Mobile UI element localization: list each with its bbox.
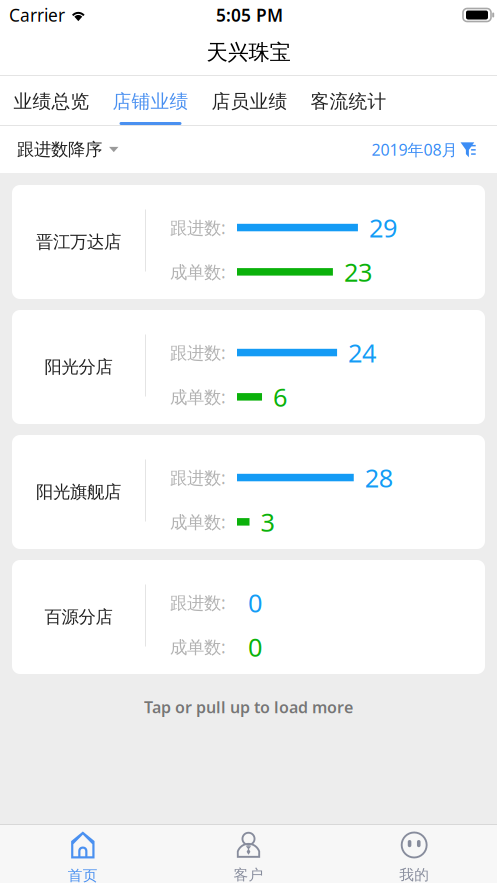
staticText: Tap or pull up to load more	[144, 696, 353, 718]
button[interactable]: 首页	[0, 825, 166, 883]
staticText: 天兴珠宝	[206, 39, 290, 66]
staticText: Carrier	[9, 3, 65, 26]
button[interactable]: 百源分店	[12, 560, 485, 674]
staticText: 3	[260, 505, 274, 539]
staticText: 百源分店	[44, 606, 112, 628]
staticText: 跟进数:	[170, 466, 226, 489]
staticText: 跟进数:	[170, 216, 226, 239]
button[interactable]: 店铺业绩	[112, 76, 189, 125]
staticText: 6	[273, 380, 287, 414]
staticText: 业绩总览	[13, 90, 89, 113]
staticText: 阳光旗舰店	[36, 481, 121, 503]
staticText: 23	[344, 255, 372, 289]
staticText: 店员业绩	[211, 90, 287, 113]
staticText: 2019年08月	[371, 139, 457, 160]
staticText: 我的	[399, 866, 429, 883]
staticText: 0	[248, 630, 262, 664]
button[interactable]: 2019年08月	[371, 126, 476, 173]
button[interactable]: 阳光旗舰店	[12, 435, 485, 549]
button[interactable]: 店员业绩	[211, 76, 288, 125]
staticText: 5:05 PM	[216, 3, 283, 26]
staticText: 29	[369, 211, 397, 244]
staticText: 成单数:	[170, 385, 226, 408]
staticText: 成单数:	[170, 635, 226, 658]
staticText: 客户	[233, 866, 263, 883]
staticText: 跟进数:	[170, 341, 226, 364]
button[interactable]: 阳光分店	[12, 310, 485, 424]
staticText: 24	[348, 336, 376, 369]
staticText: 0	[248, 586, 262, 619]
button[interactable]: 业绩总览	[13, 76, 90, 125]
button[interactable]: 我的	[331, 825, 497, 883]
button[interactable]: Tap or pull up to load more	[12, 685, 485, 729]
button[interactable]: 客户	[166, 825, 331, 883]
button[interactable]: 跟进数降序	[17, 126, 118, 173]
staticText: 跟进数:	[170, 591, 226, 614]
staticText: 成单数:	[170, 510, 226, 533]
staticText: 首页	[68, 866, 98, 883]
button[interactable]: 客流统计	[310, 76, 387, 125]
staticText: 客流统计	[310, 90, 386, 113]
staticText: 阳光分店	[44, 356, 112, 378]
staticText: 跟进数降序	[17, 139, 102, 160]
staticText: 成单数:	[170, 260, 226, 283]
staticText: 晋江万达店	[36, 231, 121, 253]
button[interactable]: 晋江万达店	[12, 185, 485, 299]
staticText: 28	[365, 461, 393, 494]
staticText: 店铺业绩	[112, 90, 188, 113]
